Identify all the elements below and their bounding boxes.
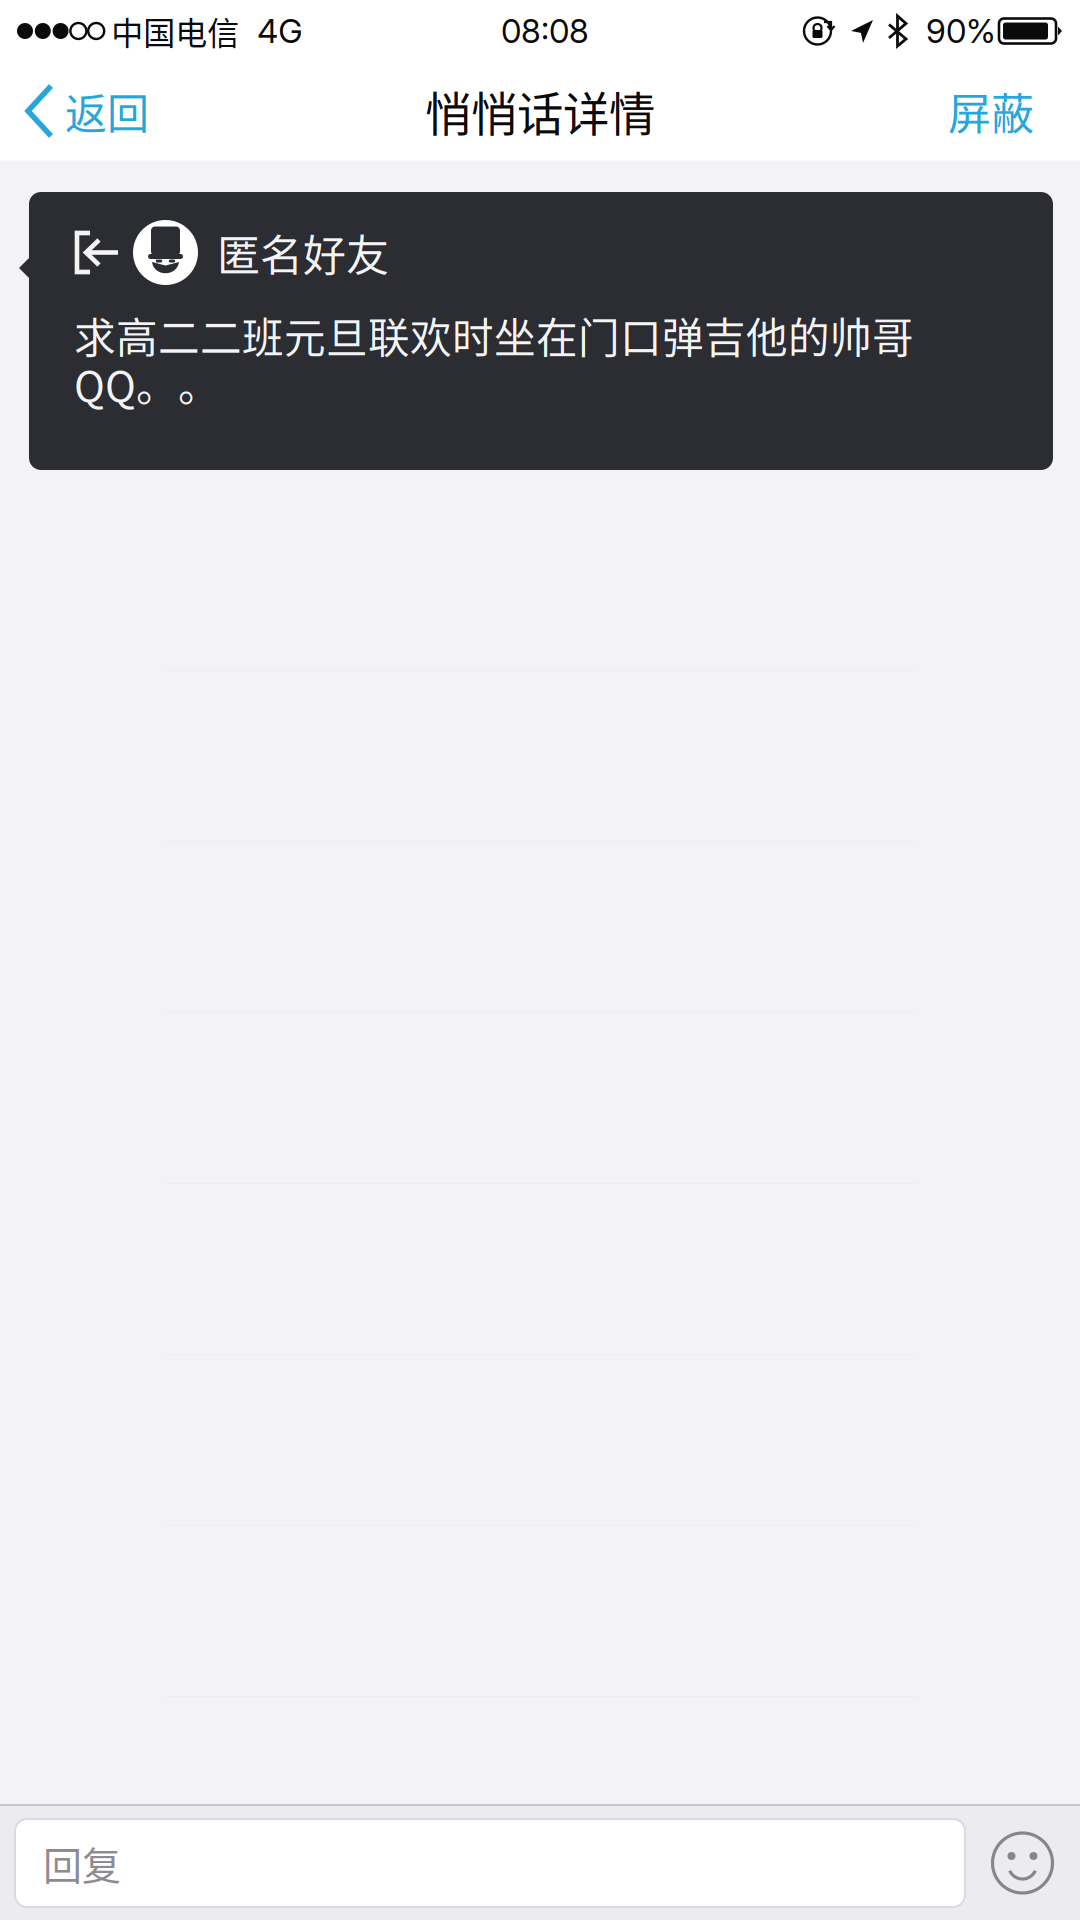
button[interactable]: 返回 [0, 62, 169, 160]
button[interactable]: 表情 [965, 1806, 1080, 1920]
staticText: 求高二二班元旦联欢时坐在门口弹吉他的帅哥QQ。。 [74, 305, 914, 413]
staticText: 90% [926, 11, 996, 51]
staticText: 返回 [65, 81, 149, 141]
staticText: 08:08 [501, 11, 589, 51]
staticText: 悄悄话详情 [425, 77, 655, 145]
button[interactable]: 屏蔽 [922, 62, 1080, 160]
staticText: 屏蔽 [948, 80, 1034, 142]
staticText: 回复 [43, 1835, 121, 1891]
button[interactable]: 回复 [15, 1819, 965, 1907]
staticText: 匿名好友 [217, 221, 389, 284]
staticText: 4G [257, 11, 302, 51]
staticText: 中国电信 [111, 8, 239, 54]
